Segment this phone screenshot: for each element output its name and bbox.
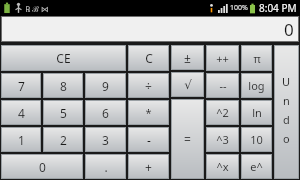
staticText: 4 (18, 105, 25, 121)
staticText: ^3 (216, 132, 229, 147)
staticText: ln (252, 105, 262, 120)
staticText: CE (56, 50, 71, 66)
button[interactable]: 6 (85, 100, 126, 125)
staticText: π (253, 51, 261, 66)
staticText: = (184, 131, 191, 147)
staticText: ^2 (216, 105, 229, 120)
button[interactable]: e^ (241, 154, 272, 179)
button[interactable]: 3 (85, 127, 126, 152)
staticText: . (104, 159, 108, 175)
button[interactable]: ^2 (206, 100, 239, 125)
button[interactable]: ÷ (128, 73, 169, 98)
button[interactable]: 1 (1, 127, 41, 152)
button[interactable]: . (85, 154, 126, 179)
staticText: d (283, 112, 290, 127)
button[interactable]: = (171, 99, 204, 179)
staticText: 9 (102, 78, 109, 94)
staticText: 6 (102, 105, 109, 121)
button[interactable]: C (128, 45, 169, 71)
staticText: 3 (102, 132, 109, 148)
staticText: 8 (60, 78, 67, 94)
button[interactable]: 2 (43, 127, 83, 152)
button[interactable]: 5 (43, 100, 83, 125)
button[interactable]: 8 (43, 73, 83, 98)
staticText: 10 (250, 132, 263, 147)
staticText: n (283, 93, 290, 108)
staticText: ± (184, 50, 191, 66)
staticText: - (147, 132, 151, 148)
button[interactable]: 9 (85, 73, 126, 98)
staticText: ÷ (145, 78, 152, 94)
staticText: log (248, 78, 265, 93)
staticText: C (145, 50, 153, 66)
staticText: ++ (216, 51, 229, 66)
staticText: o (283, 131, 290, 146)
button[interactable]: CE (1, 45, 126, 71)
button[interactable]: - (128, 127, 169, 152)
staticText: ℞ ℬ ⋈ (25, 3, 49, 14)
button[interactable]: 0 (1, 154, 83, 179)
button[interactable]: 4 (1, 100, 41, 125)
button[interactable]: ln (241, 100, 272, 125)
button[interactable]: -- (206, 73, 239, 98)
staticText: 1 (18, 132, 25, 148)
button[interactable]: 10 (241, 127, 272, 152)
button[interactable]: π (241, 45, 272, 71)
staticText: √ (184, 78, 192, 92)
staticText: 0 (39, 159, 46, 175)
staticText: + (145, 159, 152, 175)
staticText: -- (219, 78, 227, 93)
button[interactable]: ± (171, 45, 204, 70)
staticText: 7 (18, 78, 25, 94)
button[interactable]: √ (171, 72, 204, 97)
button[interactable]: 7 (1, 73, 41, 98)
staticText: ^x (216, 159, 229, 174)
staticText: 2 (60, 132, 67, 148)
button[interactable]: ^3 (206, 127, 239, 152)
button[interactable]: log (241, 73, 272, 98)
button[interactable]: ^x (206, 154, 239, 179)
staticText: * (145, 105, 152, 120)
staticText: 5 (60, 105, 67, 121)
staticText: e^ (250, 159, 263, 174)
button[interactable]: + (128, 154, 169, 179)
button[interactable]: * (128, 100, 169, 125)
button[interactable]: ++ (206, 45, 239, 71)
button[interactable]: Undo (274, 45, 299, 179)
staticText: 0 (284, 18, 294, 41)
staticText: 100% (230, 3, 248, 13)
staticText: U (282, 74, 291, 89)
staticText: 8:04 PM (259, 1, 297, 15)
